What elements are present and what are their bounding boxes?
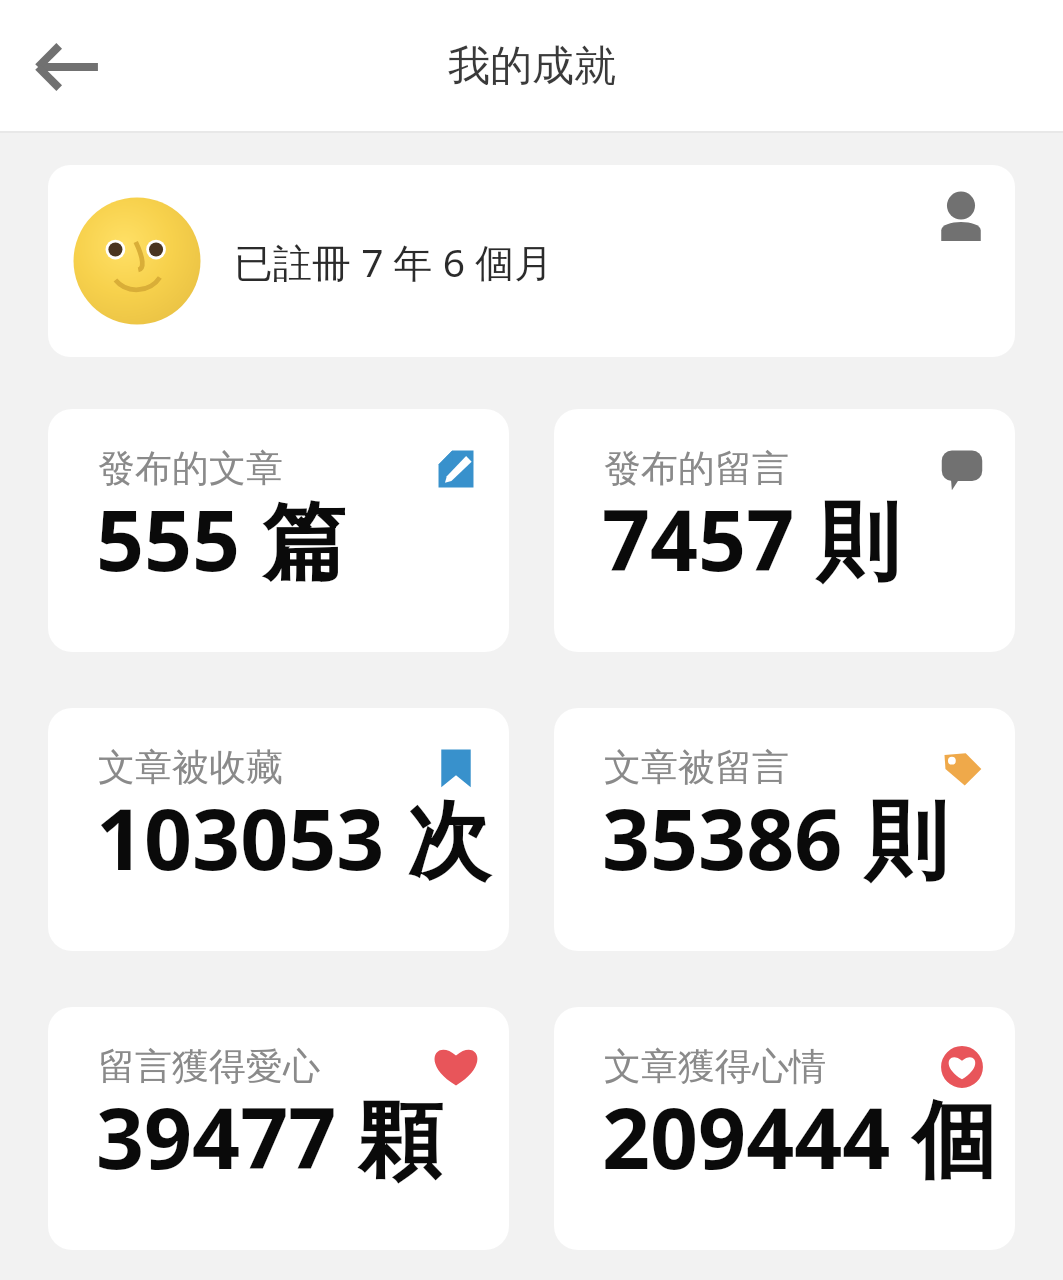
staticText: 103053 次 bbox=[96, 780, 491, 895]
staticText: 已註冊 7 年 6 個月 bbox=[234, 235, 554, 288]
staticText: 39477 顆 bbox=[96, 1079, 443, 1194]
staticText: 文章獲得心情 bbox=[604, 1043, 826, 1090]
button[interactable]: 留言獲得愛心 bbox=[48, 1007, 509, 1250]
staticText: 發布的留言 bbox=[604, 445, 789, 492]
staticText: 發布的文章 bbox=[98, 445, 283, 492]
button[interactable]: Profile bbox=[935, 191, 987, 243]
button[interactable]: Back bbox=[24, 23, 112, 111]
button[interactable]: 已註冊 7 年 6 個月 bbox=[48, 165, 1015, 357]
staticText: 文章被留言 bbox=[604, 744, 789, 791]
button[interactable]: 文章被收藏 bbox=[48, 708, 509, 951]
staticText: 我的成就 bbox=[448, 40, 616, 93]
staticText: 7457 則 bbox=[602, 481, 901, 596]
staticText: 35386 則 bbox=[602, 780, 949, 895]
button[interactable]: 文章被留言 bbox=[554, 708, 1015, 951]
button[interactable]: 文章獲得心情 bbox=[554, 1007, 1015, 1250]
staticText: 文章被收藏 bbox=[98, 744, 283, 791]
button[interactable]: 發布的留言 bbox=[554, 409, 1015, 652]
staticText: 555 篇 bbox=[96, 481, 346, 596]
staticText: 留言獲得愛心 bbox=[98, 1043, 320, 1090]
button[interactable]: 發布的文章 bbox=[48, 409, 509, 652]
staticText: 209444 個 bbox=[602, 1079, 997, 1194]
